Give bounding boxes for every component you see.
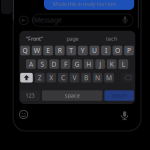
button[interactable]: 123 [20, 90, 40, 101]
staticText: M [106, 73, 112, 82]
button[interactable]: J [95, 59, 105, 69]
staticText: U [92, 46, 97, 55]
staticText: Q [23, 46, 28, 55]
staticText: I [105, 46, 107, 55]
staticText: X [49, 73, 53, 82]
button[interactable]: Y [78, 46, 88, 55]
staticText: Y [81, 46, 85, 55]
staticText: 123 [25, 92, 34, 99]
button[interactable]: T [66, 46, 76, 55]
button[interactable]: M [104, 73, 114, 82]
button[interactable]: Dictation [120, 111, 130, 121]
staticText: R [58, 46, 62, 55]
button[interactable]: A [26, 59, 36, 69]
staticText: tech [106, 35, 117, 42]
button[interactable]: D [49, 59, 59, 69]
button[interactable]: X [46, 73, 56, 82]
staticText: O [115, 46, 120, 55]
button[interactable]: G [72, 59, 82, 69]
button[interactable]: space [42, 90, 102, 101]
button[interactable]: N [93, 73, 102, 82]
staticText: H [86, 60, 91, 69]
button[interactable]: iMessage text field [32, 14, 133, 26]
button[interactable]: return [104, 90, 134, 101]
button[interactable]: Shift [20, 73, 33, 82]
staticText: page [66, 35, 78, 42]
button[interactable]: I [101, 46, 111, 55]
button[interactable]: “Front” [26, 35, 43, 42]
staticText: space [65, 92, 80, 99]
button[interactable]: Emoji [19, 110, 28, 119]
staticText: T [69, 46, 73, 55]
button[interactable]: S [37, 59, 47, 69]
button[interactable]: K [107, 59, 117, 69]
staticText: S [40, 60, 44, 69]
staticText: L [122, 60, 125, 69]
button[interactable]: Z [35, 73, 45, 82]
staticText: K [110, 60, 114, 69]
staticText: J [99, 60, 101, 69]
button[interactable]: Q [20, 46, 30, 55]
staticText: V [72, 73, 76, 82]
button[interactable]: Delete [121, 73, 134, 82]
staticText: C [61, 73, 65, 82]
staticText: Made this in really fast bro [52, 0, 115, 7]
button[interactable]: P [124, 46, 134, 55]
staticText: return [112, 92, 127, 99]
button[interactable]: R [55, 46, 65, 55]
staticText: B [84, 73, 88, 82]
button[interactable]: Back [19, 16, 28, 25]
button[interactable]: V [70, 73, 79, 82]
button[interactable]: W [32, 46, 42, 55]
button[interactable]: page [66, 35, 78, 42]
staticText: A [29, 60, 33, 69]
button[interactable]: tech [106, 35, 117, 42]
staticText: W [34, 46, 40, 55]
staticText: “Front” [26, 35, 43, 42]
staticText: N [95, 73, 100, 82]
staticText: G [75, 60, 80, 69]
staticText: Z [38, 73, 42, 82]
staticText: E [46, 46, 50, 55]
button[interactable]: F [61, 59, 70, 69]
staticText: iMessage [32, 15, 62, 24]
button[interactable]: C [58, 73, 68, 82]
button[interactable]: E [43, 46, 53, 55]
button[interactable]: U [89, 46, 99, 55]
staticText: D [51, 60, 56, 69]
button[interactable]: B [81, 73, 91, 82]
staticText: F [64, 60, 67, 69]
button[interactable]: O [113, 46, 122, 55]
button[interactable]: L [118, 59, 128, 69]
button[interactable]: H [84, 59, 94, 69]
staticText: P [127, 46, 131, 55]
